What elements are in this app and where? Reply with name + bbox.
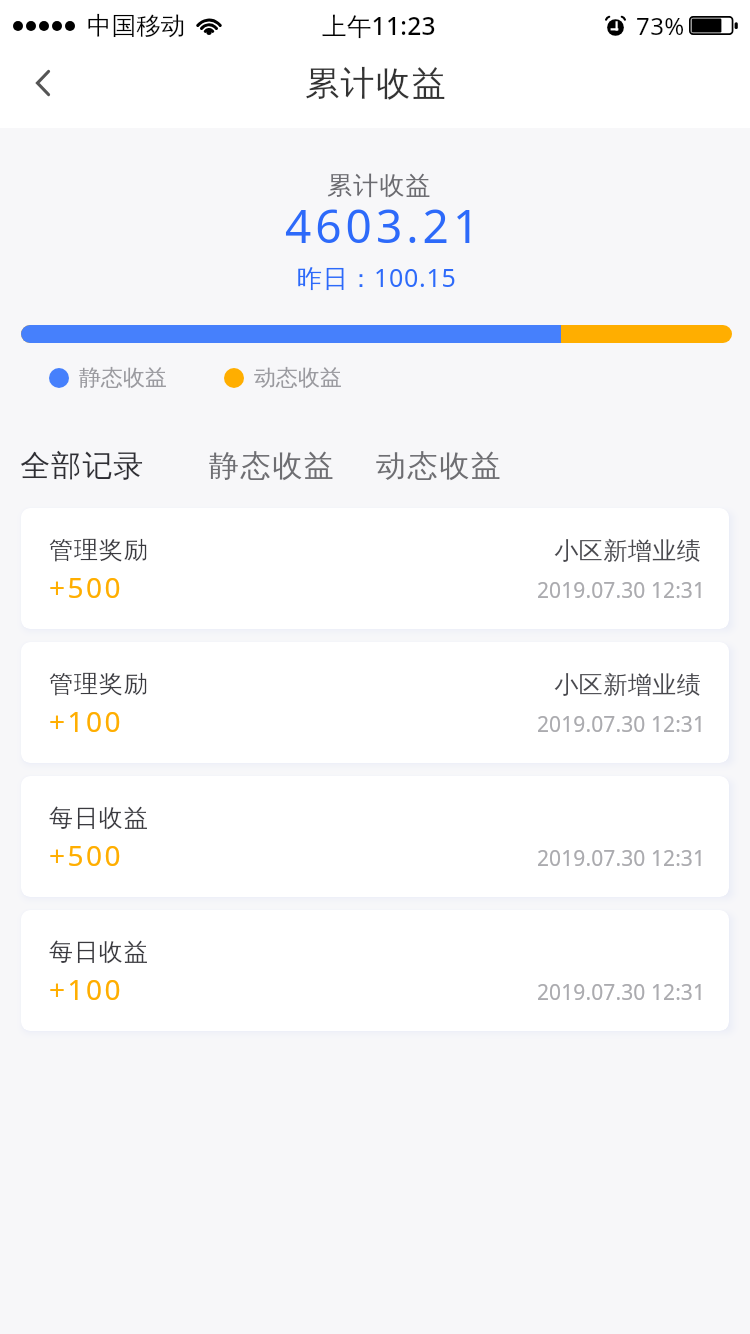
button[interactable]: Back <box>15 61 71 117</box>
staticText: 中国移动 <box>87 10 186 41</box>
staticText: 昨日：100.15 <box>297 260 457 294</box>
staticText: 动态收益 <box>376 447 503 485</box>
staticText: 每日收益 <box>49 937 149 967</box>
button[interactable]: 全部记录 <box>0 432 177 500</box>
staticText: 2019.07.30 12:31 <box>537 576 706 605</box>
staticText: 管理奖励 <box>49 669 149 699</box>
staticText: 静态收益 <box>209 447 336 485</box>
staticText: 动态收益 <box>254 364 342 392</box>
staticText: +100 <box>49 702 124 740</box>
staticText: 小区新增业绩 <box>554 670 701 700</box>
staticText: 累计收益 <box>305 62 448 105</box>
staticText: 上午11:23 <box>322 9 436 42</box>
staticText: 小区新增业绩 <box>554 536 701 566</box>
staticText: +100 <box>49 970 124 1008</box>
staticText: 全部记录 <box>20 447 145 485</box>
staticText: 4603.21 <box>285 194 484 257</box>
staticText: 2019.07.30 12:31 <box>537 844 706 873</box>
button[interactable]: 动态收益 <box>368 432 535 500</box>
button[interactable]: 每日收益 <box>21 776 729 897</box>
staticText: 2019.07.30 12:31 <box>537 978 706 1007</box>
staticText: 每日收益 <box>49 803 149 833</box>
button[interactable]: 每日收益 <box>21 910 729 1031</box>
staticText: 管理奖励 <box>49 535 149 565</box>
staticText: +500 <box>49 836 124 874</box>
staticText: 2019.07.30 12:31 <box>537 710 706 739</box>
button[interactable]: 静态收益 <box>177 432 368 500</box>
staticText: 累计收益 <box>327 170 432 201</box>
button[interactable]: 管理奖励 <box>21 508 729 629</box>
staticText: 73% <box>636 9 685 42</box>
button[interactable]: 管理奖励 <box>21 642 729 763</box>
staticText: 静态收益 <box>79 364 167 392</box>
staticText: +500 <box>49 568 124 606</box>
